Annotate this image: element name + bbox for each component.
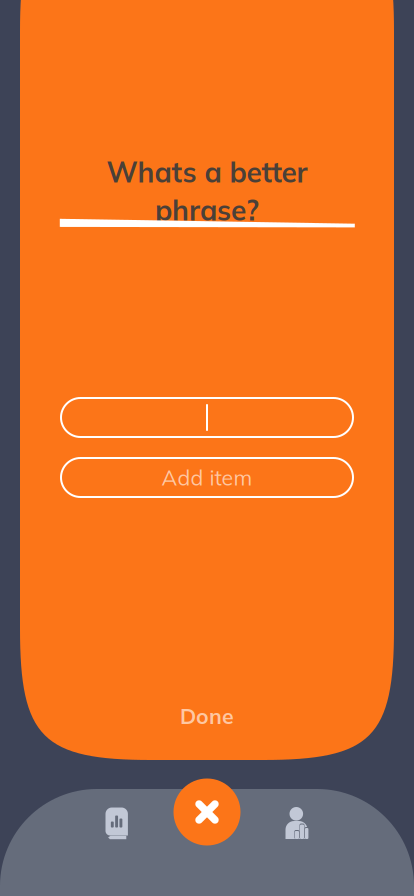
staticText: Done	[180, 703, 234, 729]
button[interactable]: Profile	[262, 795, 332, 851]
button[interactable]: Done	[147, 696, 267, 736]
staticText: Add item	[161, 464, 252, 491]
button[interactable]: Close	[173, 778, 240, 845]
staticText: phrase?	[155, 192, 259, 227]
staticText: Whats a better	[106, 154, 307, 189]
button[interactable]: Add item	[61, 458, 353, 497]
button[interactable]: Surveys	[82, 795, 152, 851]
